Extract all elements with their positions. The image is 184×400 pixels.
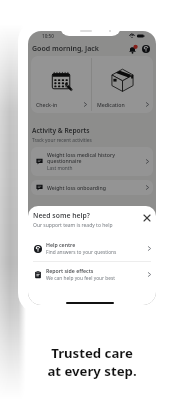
staticText: Check-in (36, 101, 58, 108)
staticText: Find answers to your questions (46, 249, 117, 256)
button[interactable]: Report side effects (28, 262, 156, 287)
staticText: Report side effects (46, 267, 94, 274)
staticText: Weight loss onboarding (47, 184, 106, 191)
staticText: Trusted care (51, 344, 133, 362)
staticText: Last month (47, 165, 73, 172)
staticText: Activity & Reports (32, 126, 90, 135)
staticText: Good morning, Jack (32, 44, 99, 54)
staticText: Weight loss medical history questionnair… (47, 151, 115, 165)
staticText: Medication (97, 101, 125, 108)
button[interactable]: Weight loss onboarding (31, 180, 153, 195)
button[interactable]: Weight loss medical history questionnair… (31, 147, 153, 176)
staticText: at every step. (47, 362, 137, 380)
staticText: 10:50 (42, 33, 54, 39)
button[interactable]: Check-in (31, 56, 91, 113)
button[interactable]: Close (140, 211, 153, 224)
staticText: We can help you feel your best (46, 275, 115, 282)
button[interactable]: Help (140, 43, 152, 55)
staticText: Need some help? (33, 211, 90, 220)
button[interactable]: Notifications (126, 43, 138, 55)
staticText: Our support team is ready to help (33, 222, 113, 229)
button[interactable]: Help centre (28, 236, 156, 261)
staticText: Help centre (46, 241, 76, 248)
staticText: Track your recent activities (32, 137, 92, 144)
button[interactable]: Medication (92, 56, 153, 113)
